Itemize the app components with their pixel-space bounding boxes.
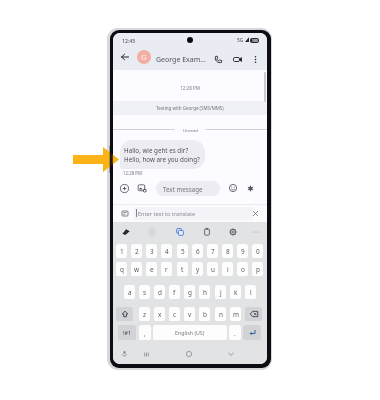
button[interactable]: Enter xyxy=(243,325,261,340)
button[interactable]: 8 xyxy=(222,244,233,258)
button[interactable]: i xyxy=(222,262,233,276)
button[interactable]: a xyxy=(124,285,135,299)
staticText: a xyxy=(128,288,132,297)
staticText: Unread xyxy=(183,127,198,133)
staticText: Text message xyxy=(163,185,203,193)
button[interactable]: h xyxy=(199,285,210,299)
button[interactable]: More options xyxy=(247,49,263,70)
staticText: 12:28 PM xyxy=(123,170,143,176)
button[interactable]: 9 xyxy=(237,244,248,258)
button[interactable]: Shift xyxy=(116,307,133,321)
button[interactable]: GIF xyxy=(118,222,134,242)
button[interactable]: Back xyxy=(117,49,133,65)
button[interactable]: p xyxy=(252,262,263,276)
staticText: , xyxy=(144,329,146,337)
button[interactable]: Add xyxy=(116,180,132,196)
button[interactable]: t xyxy=(177,262,188,276)
staticText: b xyxy=(203,310,207,319)
staticText: e xyxy=(150,265,154,274)
button[interactable]: Home xyxy=(182,347,196,361)
staticText: j xyxy=(220,288,222,297)
staticText: 4 xyxy=(165,247,169,256)
button[interactable]: Close translate xyxy=(248,205,263,221)
staticText: Hello, how are you doing? xyxy=(124,155,200,164)
staticText: h xyxy=(203,288,207,297)
button[interactable]: Voice typing xyxy=(144,222,160,242)
button[interactable]: Text message xyxy=(156,181,220,196)
staticText: 7 xyxy=(211,247,215,256)
button[interactable]: u xyxy=(207,262,218,276)
button[interactable]: v xyxy=(184,307,195,321)
button[interactable]: 1 xyxy=(116,244,127,258)
button[interactable]: m xyxy=(230,307,241,321)
button[interactable]: Stickers xyxy=(172,222,188,242)
staticText: f xyxy=(173,288,176,297)
staticText: o xyxy=(241,265,245,274)
button[interactable]: g xyxy=(184,285,195,299)
button[interactable]: Enter text to translate xyxy=(134,207,253,220)
button[interactable]: Recent apps xyxy=(139,347,153,361)
button[interactable]: Translate xyxy=(118,205,132,221)
button[interactable]: r xyxy=(161,262,172,276)
staticText: Texting with George (SMS/MMS) xyxy=(156,105,224,111)
staticText: 6 xyxy=(196,247,200,256)
staticText: Enter text to translate xyxy=(138,210,196,218)
button[interactable]: 4 xyxy=(161,244,172,258)
staticText: 0 xyxy=(256,247,260,256)
button[interactable]: s xyxy=(139,285,150,299)
button[interactable]: Clipboard xyxy=(199,222,215,242)
button[interactable]: j xyxy=(215,285,226,299)
staticText: q xyxy=(120,265,124,274)
staticText: 2 xyxy=(135,247,139,256)
button[interactable]: , xyxy=(139,325,151,340)
button[interactable]: 7 xyxy=(207,244,218,258)
button[interactable]: l xyxy=(245,285,256,299)
button[interactable]: Magic compose xyxy=(242,180,258,196)
button[interactable]: Voice input xyxy=(117,347,131,361)
button[interactable]: 2 xyxy=(131,244,142,258)
button[interactable]: k xyxy=(230,285,241,299)
button[interactable]: w xyxy=(131,262,142,276)
button[interactable]: English (US) xyxy=(153,325,227,340)
button[interactable]: f xyxy=(169,285,180,299)
staticText: k xyxy=(234,288,238,297)
button[interactable]: c xyxy=(169,307,180,321)
button[interactable]: 3 xyxy=(146,244,157,258)
button[interactable]: 0 xyxy=(252,244,263,258)
staticText: z xyxy=(143,310,147,319)
button[interactable]: Gallery xyxy=(134,180,150,196)
button[interactable]: Hallo, wie geht es dir? xyxy=(124,146,200,164)
button[interactable]: Settings xyxy=(225,222,241,242)
staticText: v xyxy=(188,310,192,319)
button[interactable]: Emoji xyxy=(225,180,241,196)
staticText: 5G xyxy=(237,37,244,44)
button[interactable]: q xyxy=(116,262,127,276)
button[interactable]: 5 xyxy=(177,244,188,258)
staticText: 5 xyxy=(181,247,185,256)
staticText: c xyxy=(173,310,177,319)
button[interactable]: n xyxy=(215,307,226,321)
button[interactable]: Call xyxy=(210,49,226,70)
button[interactable]: Backspace xyxy=(245,307,262,321)
staticText: 9 xyxy=(241,247,245,256)
button[interactable]: Video call xyxy=(229,49,245,70)
staticText: 12:28 PM xyxy=(113,85,267,91)
button[interactable]: !#1 xyxy=(118,325,136,340)
staticText: t xyxy=(181,265,184,274)
staticText: 100 xyxy=(252,39,258,43)
button[interactable]: e xyxy=(146,262,157,276)
button[interactable]: Hide keyboard xyxy=(224,347,238,361)
button[interactable]: x xyxy=(154,307,165,321)
staticText: n xyxy=(219,310,223,319)
staticText: Hallo, wie geht es dir? xyxy=(124,146,189,155)
button[interactable]: y xyxy=(192,262,203,276)
button[interactable]: o xyxy=(237,262,248,276)
staticText: George Exam... xyxy=(156,55,206,65)
button[interactable]: b xyxy=(199,307,210,321)
button[interactable]: . xyxy=(229,325,241,340)
staticText: i xyxy=(227,265,229,274)
button[interactable]: d xyxy=(154,285,165,299)
button[interactable]: 6 xyxy=(192,244,203,258)
button[interactable]: z xyxy=(139,307,150,321)
